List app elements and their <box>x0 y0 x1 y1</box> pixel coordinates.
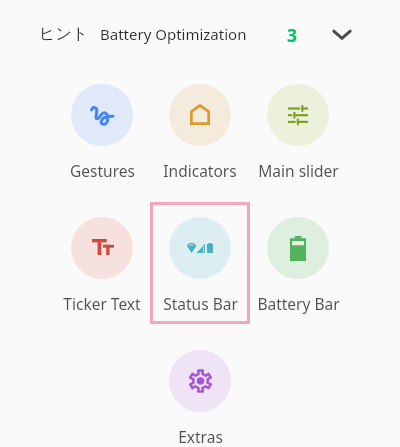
staticText: Ticker Text <box>63 293 141 314</box>
button[interactable]: Expand <box>326 19 358 51</box>
staticText: Indicators <box>163 160 237 181</box>
staticText: Main slider <box>258 160 339 181</box>
button[interactable]: Main slider <box>248 69 348 191</box>
button[interactable]: Indicators <box>150 69 250 191</box>
button[interactable]: Gestures <box>52 69 152 191</box>
button[interactable]: Ticker Text <box>52 202 152 324</box>
staticText: Extras <box>178 426 223 447</box>
button[interactable]: Battery Bar <box>248 202 348 324</box>
staticText: 3 <box>287 23 298 47</box>
button[interactable]: Status Bar <box>150 202 250 324</box>
staticText: Gestures <box>70 160 135 181</box>
staticText: Battery Bar <box>257 293 340 314</box>
button[interactable]: Extras <box>150 335 250 447</box>
staticText: Status Bar <box>163 293 238 314</box>
staticText: Battery Optimization <box>100 24 247 44</box>
staticText: ヒント <box>39 24 89 44</box>
